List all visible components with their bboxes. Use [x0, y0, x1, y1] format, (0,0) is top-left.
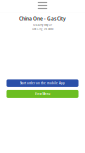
button[interactable]: Start order on the mobile App [6, 79, 78, 87]
staticText: China One - Gas City [19, 15, 66, 22]
button[interactable]: Menu [33, 0, 51, 11]
staticText: Start order on the mobile App [20, 81, 65, 85]
button[interactable]: View Menu [6, 90, 78, 98]
staticText: 6714 Amy Way Dr [33, 23, 52, 27]
staticText: View Menu [34, 92, 50, 96]
staticText: Gas City, IN 46933 [32, 27, 53, 31]
